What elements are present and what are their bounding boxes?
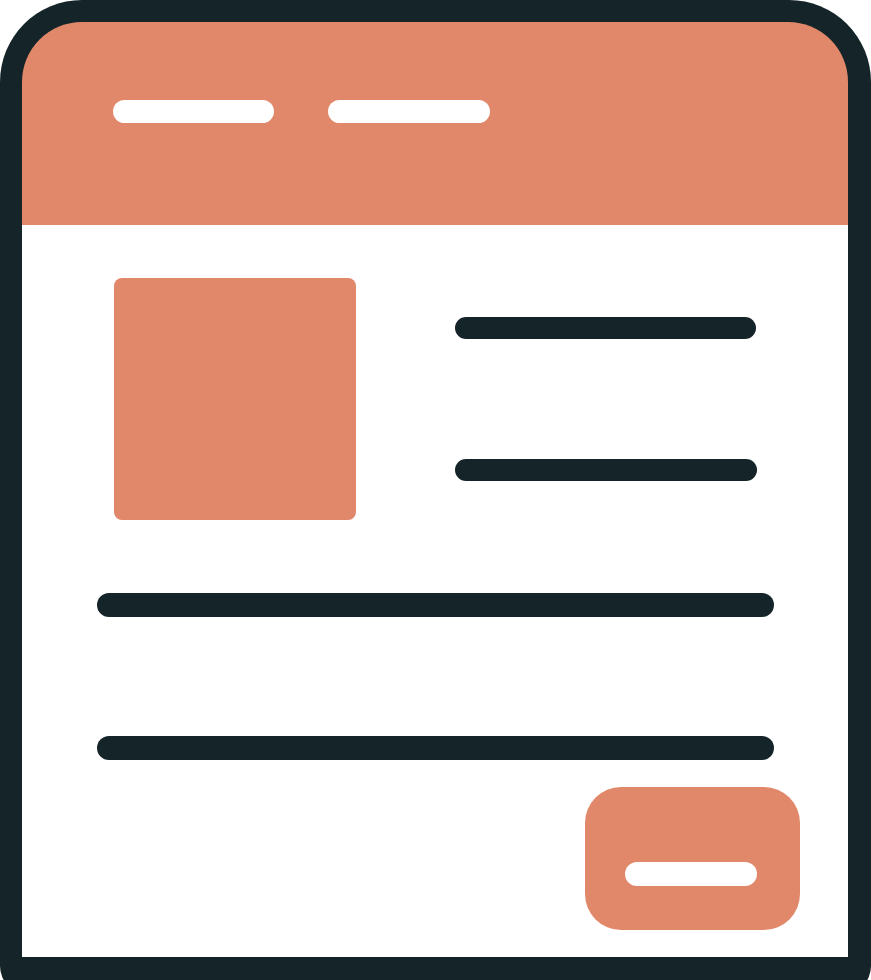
button[interactable]: Second tab — [328, 100, 490, 123]
button[interactable]: First tab — [113, 100, 274, 123]
button[interactable]: Primary action button — [585, 787, 800, 930]
